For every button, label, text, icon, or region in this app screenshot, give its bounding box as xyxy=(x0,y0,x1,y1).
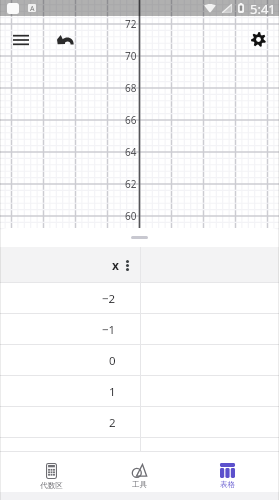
staticText: 1 xyxy=(109,384,116,400)
staticText: 表格 xyxy=(220,480,235,489)
button[interactable]: Column options xyxy=(121,259,134,272)
staticText: 0 xyxy=(109,353,116,369)
staticText: 66 xyxy=(125,113,137,127)
staticText: 68 xyxy=(125,81,137,95)
button[interactable]: Undo xyxy=(47,22,83,58)
button[interactable]: Settings xyxy=(240,21,276,57)
button[interactable]: 0 xyxy=(0,345,279,376)
staticText: 工具 xyxy=(132,480,147,489)
button[interactable]: 1 xyxy=(0,376,279,407)
staticText: 5:41 xyxy=(250,0,276,16)
staticText: 72 xyxy=(125,17,137,31)
button[interactable]: Menu xyxy=(3,22,39,58)
button[interactable]: −1 xyxy=(0,314,279,345)
staticText: 代数区 xyxy=(40,481,63,490)
staticText: x xyxy=(112,257,119,273)
staticText: 70 xyxy=(125,49,137,63)
button[interactable]: 代数区 xyxy=(8,452,95,492)
button[interactable]: 工具 xyxy=(95,452,183,492)
staticText: 62 xyxy=(125,177,137,191)
button[interactable]: 2 xyxy=(0,407,279,438)
staticText: −1 xyxy=(102,322,116,338)
staticText: −2 xyxy=(102,291,116,307)
staticText: 64 xyxy=(125,145,137,159)
button[interactable]: −2 xyxy=(0,283,279,314)
staticText: 2 xyxy=(109,415,116,431)
staticText: A xyxy=(30,4,35,12)
staticText: 60 xyxy=(125,209,137,223)
button[interactable]: 表格 xyxy=(183,452,271,492)
